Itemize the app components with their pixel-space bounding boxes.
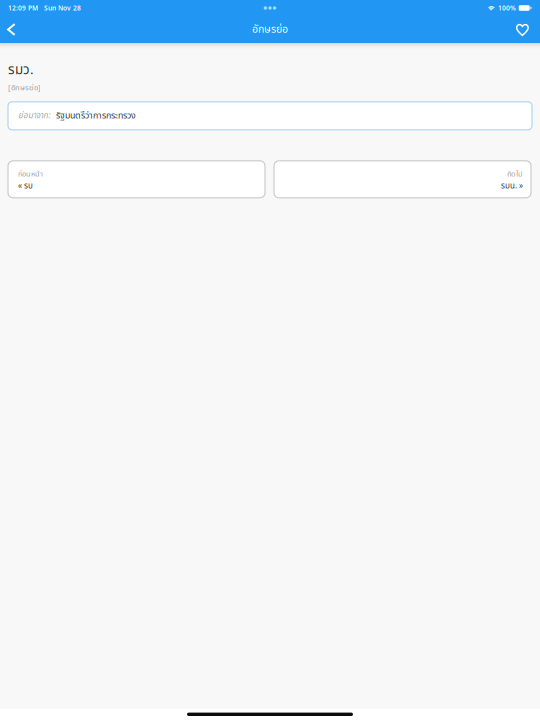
staticText: ย่อมาจาก:: [18, 110, 50, 122]
staticText: 100%: [498, 4, 516, 12]
button[interactable]: Back: [0, 16, 26, 43]
staticText: รมน. »: [501, 180, 523, 192]
staticText: ก่อนหน้า: [18, 169, 43, 180]
staticText: « รบ: [18, 180, 33, 192]
staticText: 12:09 PM Sun Nov 28: [8, 4, 81, 12]
button[interactable]: Add to favourites: [512, 16, 540, 43]
staticText: [อักษรย่อ]: [8, 82, 41, 94]
staticText: รัฐมนตรีว่าการกระทรวง: [56, 109, 136, 122]
staticText: ถัดไป: [507, 169, 523, 180]
button[interactable]: ถัดไป: [274, 161, 531, 198]
button[interactable]: ก่อนหน้า: [8, 161, 265, 198]
staticText: อักษรย่อ: [252, 21, 288, 37]
staticText: รมว.: [8, 60, 34, 80]
